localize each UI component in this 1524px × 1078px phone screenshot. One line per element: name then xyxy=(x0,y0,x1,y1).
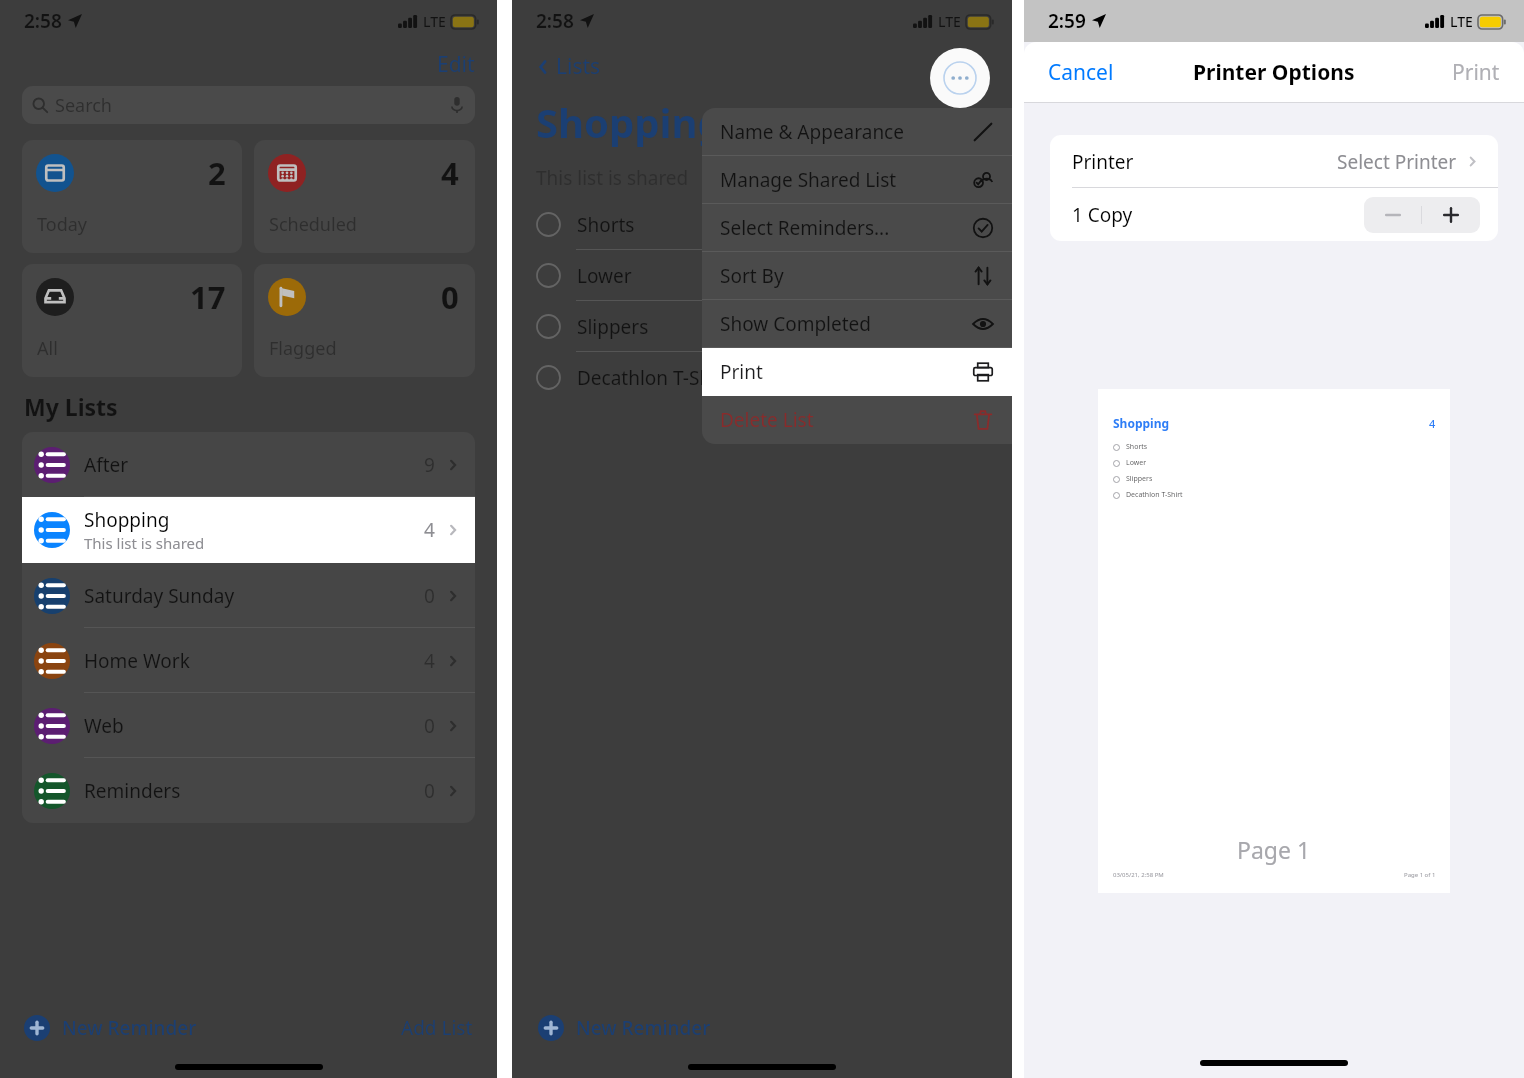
staticText: Shorts xyxy=(577,212,635,238)
button[interactable]: New Reminder xyxy=(22,1011,199,1045)
staticText: Name & Appearance xyxy=(720,119,972,145)
button[interactable]: New Reminder xyxy=(534,1011,715,1045)
button[interactable]: Sort By xyxy=(702,252,1012,300)
staticText: Print xyxy=(720,359,972,385)
button[interactable]: More options xyxy=(930,48,990,108)
staticText: Sort By xyxy=(720,263,972,289)
button[interactable]: Print xyxy=(1444,54,1524,91)
staticText: This list is shared xyxy=(84,533,205,553)
staticText: Shopping xyxy=(1113,415,1429,431)
staticText: Edit xyxy=(437,50,475,79)
staticText: 0 xyxy=(441,276,459,318)
staticText: Decathlon T-Shirt xyxy=(1126,490,1183,500)
staticText: LTE xyxy=(423,12,446,31)
staticText: Shopping xyxy=(536,95,723,149)
staticText: Lower xyxy=(1126,458,1147,468)
button[interactable]: 0 xyxy=(254,264,475,377)
staticText: Show Completed xyxy=(720,311,972,337)
button[interactable]: Complete Lower xyxy=(512,250,1012,301)
staticText: Web xyxy=(84,713,124,739)
staticText: Add List xyxy=(401,1015,473,1041)
button[interactable]: After xyxy=(22,432,475,497)
staticText: Page 1 of 1 xyxy=(1404,871,1436,879)
button[interactable]: Print xyxy=(702,348,1012,396)
staticText: 4 xyxy=(424,517,435,543)
button[interactable]: Search xyxy=(22,86,475,124)
staticText: Select Printer xyxy=(1337,149,1457,175)
button[interactable]: 17 xyxy=(22,264,242,377)
button[interactable]: Name & Appearance xyxy=(702,108,1012,156)
button[interactable]: Web xyxy=(22,693,475,758)
staticText: Home Work xyxy=(84,648,190,674)
button[interactable]: Increase copies xyxy=(1422,197,1480,233)
button[interactable]: Decrease copies xyxy=(1364,197,1421,233)
staticText: Today xyxy=(37,212,87,237)
button[interactable]: Cancel xyxy=(1024,54,1122,91)
button[interactable]: Home Work xyxy=(22,628,475,693)
staticText: 2:59 xyxy=(1048,8,1086,34)
staticText: This list is shared xyxy=(536,165,689,191)
staticText: Reminders xyxy=(84,778,181,804)
button[interactable]: Edit xyxy=(415,46,497,83)
button[interactable]: Lists xyxy=(530,48,605,85)
staticText: New Reminder xyxy=(62,1015,197,1041)
staticText: After xyxy=(84,452,129,478)
staticText: Printer Options xyxy=(1193,58,1355,87)
staticText: New Reminder xyxy=(576,1015,711,1041)
button[interactable]: Delete List xyxy=(702,396,1012,444)
staticText: 0 xyxy=(424,583,435,609)
button[interactable]: Show Completed xyxy=(702,300,1012,348)
staticText: Page 1 xyxy=(1237,834,1311,865)
staticText: Lists xyxy=(556,52,601,81)
staticText: LTE xyxy=(1450,12,1473,31)
other: Complete Decathlon T-Shirt xyxy=(536,365,561,390)
staticText: 0 xyxy=(424,713,435,739)
button[interactable]: Select Reminders... xyxy=(702,204,1012,252)
staticText: Select Reminders... xyxy=(720,215,972,241)
button[interactable]: Complete Slippers xyxy=(512,301,1012,352)
button[interactable]: Manage Shared List xyxy=(702,156,1012,204)
button[interactable]: Complete Shorts xyxy=(512,199,1012,250)
staticText: 4 xyxy=(441,152,459,194)
staticText: Print xyxy=(1452,58,1500,87)
staticText: 9 xyxy=(424,452,435,478)
other: Complete Shorts xyxy=(536,212,561,237)
staticText: 2:58 xyxy=(536,8,574,34)
button[interactable]: 4 xyxy=(254,140,475,253)
staticText: 4 xyxy=(1429,416,1436,431)
staticText: Decathlon T-Shirt xyxy=(577,365,731,391)
staticText: LTE xyxy=(938,12,961,31)
staticText: Printer xyxy=(1072,149,1337,175)
staticText: Shorts xyxy=(1126,442,1148,452)
staticText: Slippers xyxy=(577,314,649,340)
staticText: My Lists xyxy=(24,391,118,422)
button[interactable]: Shopping xyxy=(22,497,475,563)
staticText: 4 xyxy=(424,648,435,674)
staticText: Manage Shared List xyxy=(720,167,972,193)
staticText: Saturday Sunday xyxy=(84,583,235,609)
button[interactable]: Printer xyxy=(1050,135,1498,188)
staticText: Shopping xyxy=(84,507,170,533)
staticText: Flagged xyxy=(269,336,337,361)
staticText: Lower xyxy=(577,263,632,289)
button[interactable]: Complete Decathlon T-Shirt xyxy=(512,352,1012,403)
other: Complete Slippers xyxy=(536,314,561,339)
button[interactable]: Reminders xyxy=(22,758,475,823)
other: Complete Lower xyxy=(536,263,561,288)
staticText: Cancel xyxy=(1048,58,1114,87)
staticText: 1 Copy xyxy=(1072,202,1364,228)
staticText: 2:58 xyxy=(24,8,62,34)
button[interactable]: Saturday Sunday xyxy=(22,563,475,628)
button[interactable]: Add List xyxy=(399,1011,475,1045)
staticText: All xyxy=(37,336,58,361)
staticText: Scheduled xyxy=(269,212,357,237)
staticText: Slippers xyxy=(1126,474,1153,484)
button[interactable]: 2 xyxy=(22,140,242,253)
staticText: 2 xyxy=(208,152,226,194)
staticText: Search xyxy=(55,93,112,118)
staticText: Delete List xyxy=(720,407,972,433)
other: Dictate xyxy=(449,97,465,113)
staticText: 17 xyxy=(190,276,226,318)
staticText: 03/05/21, 2:58 PM xyxy=(1113,871,1164,879)
staticText: 0 xyxy=(424,778,435,804)
